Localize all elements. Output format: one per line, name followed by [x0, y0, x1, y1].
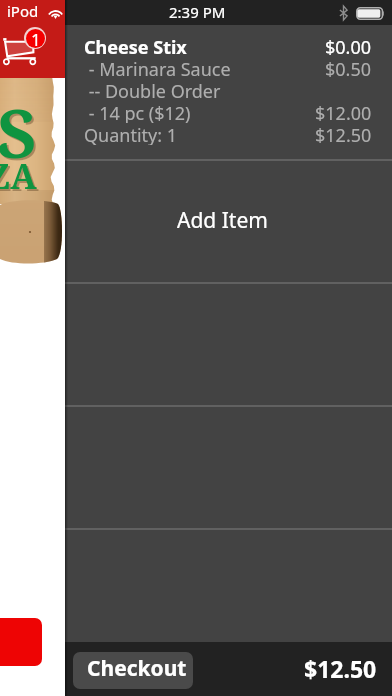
staticText: iPod	[7, 1, 39, 21]
staticText: $0.00	[325, 35, 372, 57]
staticText: $12.00	[315, 101, 372, 123]
staticText: Quantity: 1	[84, 123, 178, 145]
staticText: ZA	[0, 152, 37, 200]
staticText: 2:39 PM	[169, 2, 226, 22]
staticText: -- Double Order	[84, 79, 221, 101]
button[interactable]: Cheese Stix	[65, 25, 392, 159]
staticText: Add Item	[177, 206, 268, 235]
button[interactable]: Add Item	[65, 161, 392, 282]
staticText: S	[0, 85, 37, 178]
staticText: - 14 pc ($12)	[84, 101, 191, 123]
staticText: $12.50	[315, 123, 372, 145]
staticText: Checkout	[87, 654, 187, 683]
staticText: ZA	[0, 154, 39, 202]
button[interactable]: Order	[0, 618, 42, 666]
staticText: $12.50	[304, 653, 377, 684]
staticText: $0.50	[325, 57, 372, 79]
staticText: - Marinara Sauce	[84, 57, 231, 79]
button[interactable]: Checkout	[73, 652, 193, 689]
button[interactable]: Cart	[1, 25, 49, 69]
staticText: 1	[31, 29, 41, 47]
staticText: S	[0, 87, 39, 180]
staticText: Cheese Stix	[84, 35, 187, 57]
